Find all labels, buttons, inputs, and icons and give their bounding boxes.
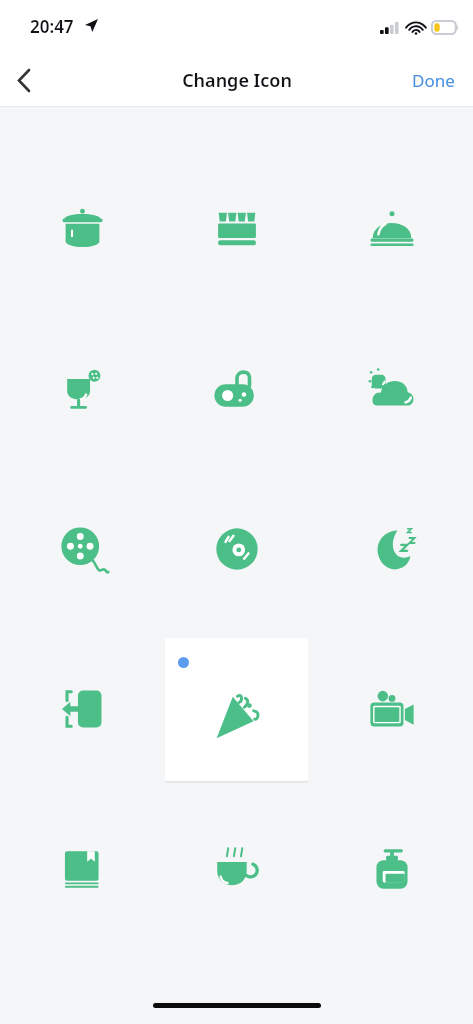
- staticText: Change Icon: [182, 68, 292, 93]
- button[interactable]: Weather: [319, 314, 464, 464]
- staticText: Done: [412, 69, 455, 92]
- button[interactable]: Disc: [164, 474, 309, 624]
- button[interactable]: Exit: [10, 634, 155, 784]
- button[interactable]: Done: [394, 57, 473, 104]
- button[interactable]: Market stall: [164, 154, 309, 304]
- button[interactable]: Book: [10, 794, 155, 944]
- button[interactable]: Soap dispenser: [319, 794, 464, 944]
- button[interactable]: Back: [0, 56, 48, 104]
- staticText: 20:47: [30, 15, 74, 38]
- button[interactable]: Coffee: [164, 794, 309, 944]
- button[interactable]: Game controller: [164, 314, 309, 464]
- button[interactable]: Cocktail: [10, 314, 155, 464]
- button[interactable]: Cooking pot: [10, 154, 155, 304]
- button[interactable]: Video camera: [319, 634, 464, 784]
- button[interactable]: Party popper, selected: [164, 634, 309, 784]
- button[interactable]: Food cover: [319, 154, 464, 304]
- button[interactable]: Sleep: [319, 474, 464, 624]
- button[interactable]: Film reel: [10, 474, 155, 624]
